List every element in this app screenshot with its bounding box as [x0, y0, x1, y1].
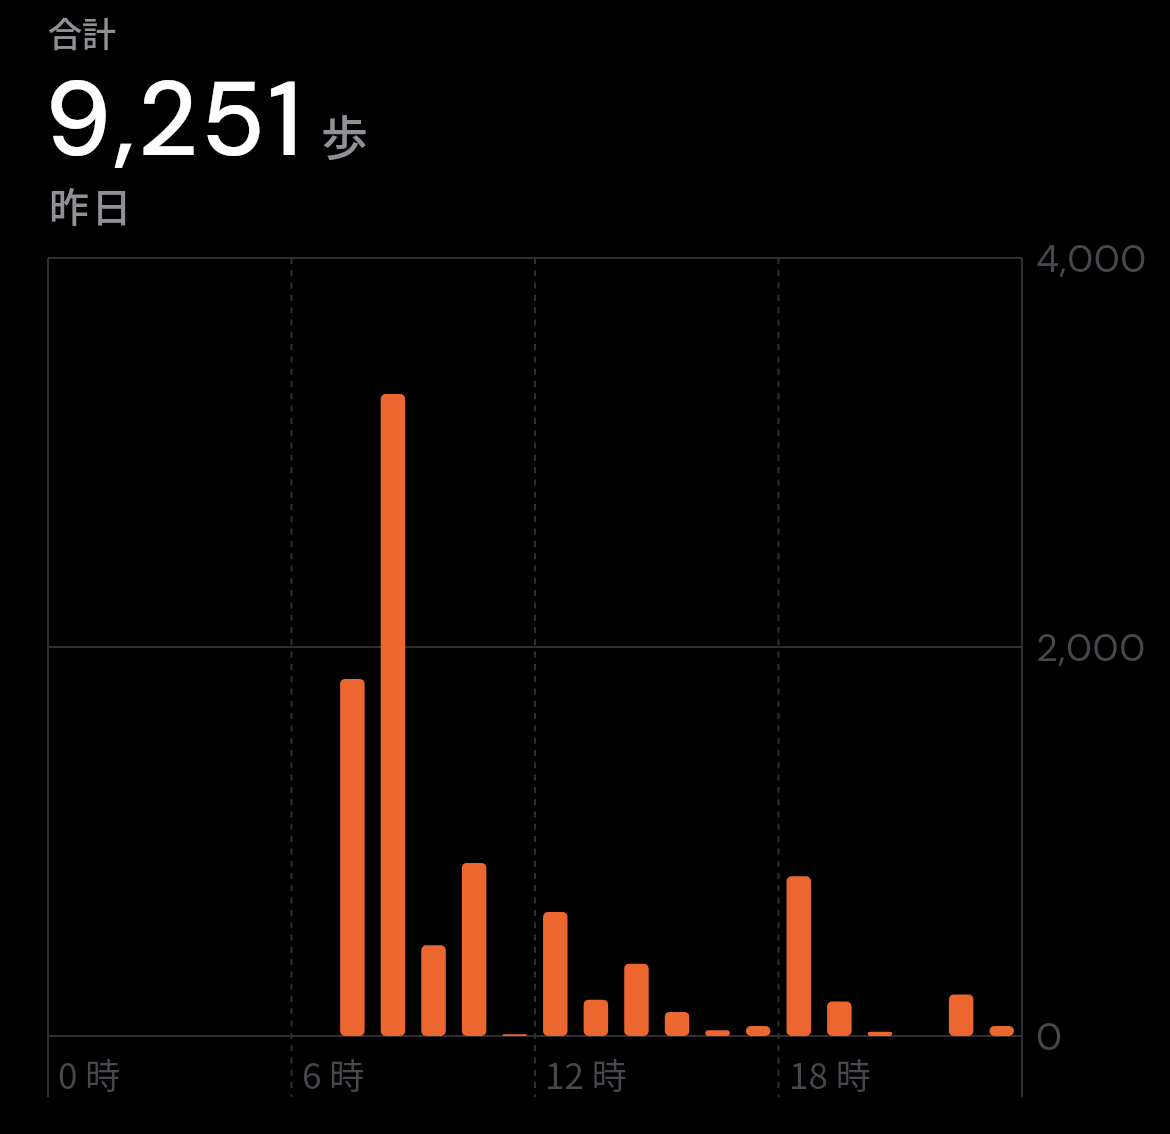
staticText: 0 時 [58, 1048, 121, 1099]
staticText: 18 時 [789, 1048, 871, 1099]
button[interactable]: Hourly step chart [0, 0, 1170, 1134]
staticText: 合計 [48, 8, 116, 57]
staticText: 9,251 [45, 51, 305, 188]
staticText: 2,000 [1036, 623, 1146, 672]
staticText: 6 時 [302, 1048, 365, 1099]
staticText: 昨日 [49, 176, 134, 234]
staticText: 0 [1036, 1012, 1063, 1061]
staticText: 歩 [321, 100, 368, 168]
staticText: 4,000 [1036, 234, 1147, 283]
staticText: 12 時 [545, 1048, 627, 1099]
